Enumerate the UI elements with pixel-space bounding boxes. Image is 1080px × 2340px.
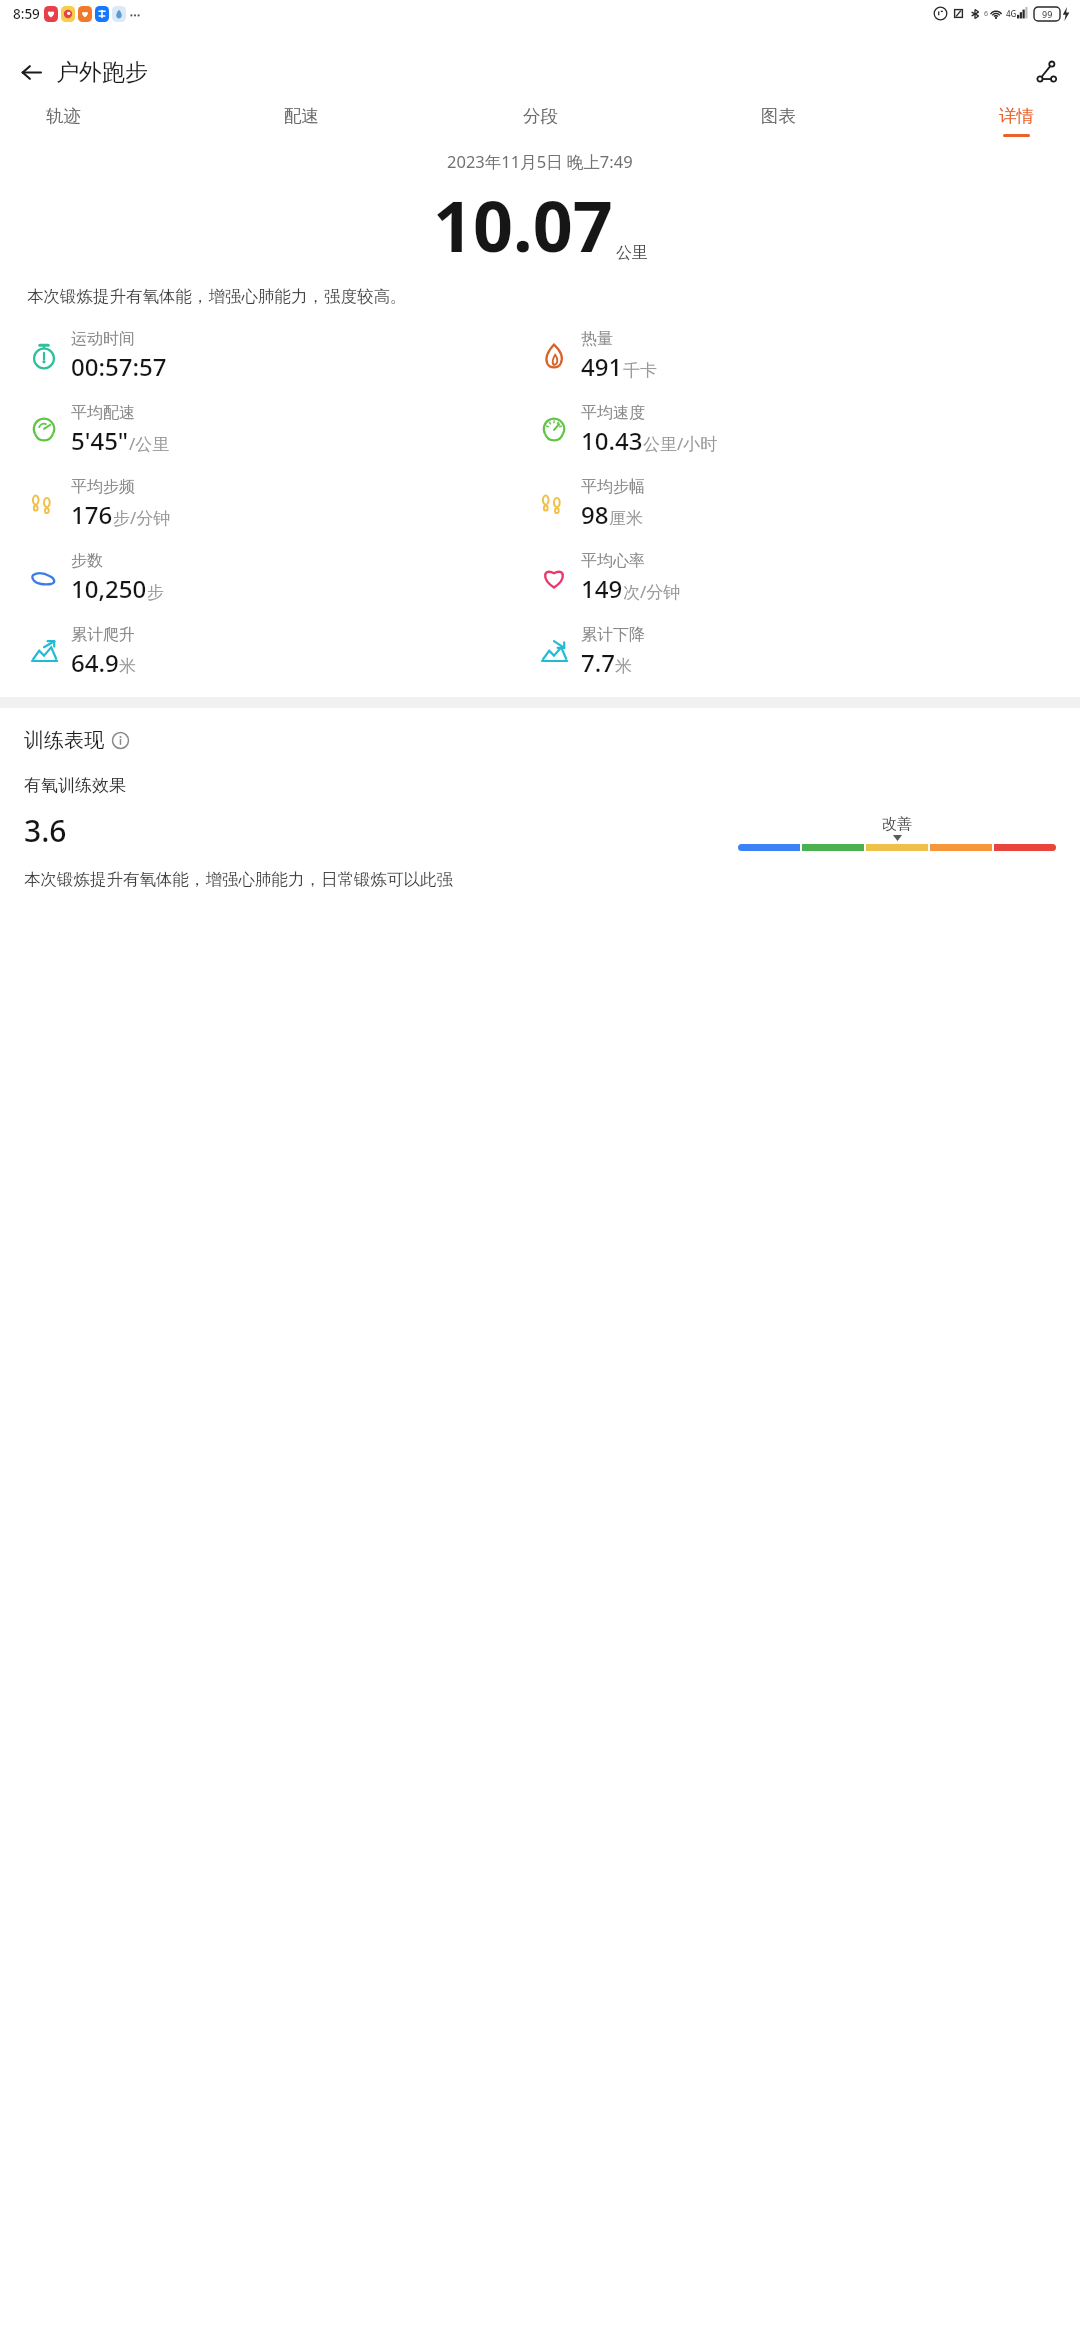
staticText: 热量 — [581, 329, 613, 349]
staticText: 本次锻炼提升有氧体能，增强心肺能力，强度较高。 — [27, 286, 1053, 307]
staticText: 平均步频 — [71, 477, 135, 497]
staticText: 改善 — [882, 815, 912, 834]
staticText: 次/分钟 — [623, 580, 681, 603]
staticText: 149 — [581, 572, 623, 605]
button[interactable]: 平均步幅 — [534, 477, 1070, 531]
staticText: 10,250 — [71, 572, 147, 605]
button[interactable]: 训练表现 — [24, 728, 129, 753]
button[interactable]: 配速 — [280, 105, 323, 137]
staticText: 轨迹 — [46, 105, 81, 127]
staticText: 米 — [119, 656, 136, 677]
staticText: 2023年11月5日 晚上7:49 — [447, 150, 633, 173]
other: Info — [112, 732, 129, 749]
staticText: 有氧训练效果 — [24, 775, 126, 796]
staticText: 00:57:57 — [71, 350, 167, 383]
staticText: 6 — [984, 9, 989, 19]
staticText: 8:59 — [13, 5, 40, 23]
staticText: 户外跑步 — [56, 58, 148, 87]
staticText: 步 — [147, 582, 164, 603]
button[interactable]: 步数 — [24, 551, 534, 605]
button[interactable]: 分段 — [519, 105, 562, 137]
button[interactable]: 平均配速 — [24, 403, 534, 457]
staticText: 公里 — [616, 243, 648, 263]
staticText: 累计下降 — [581, 625, 645, 645]
staticText: 步数 — [71, 551, 103, 571]
button[interactable]: 平均步频 — [24, 477, 534, 531]
staticText: 491 — [581, 350, 623, 383]
staticText: 平均心率 — [581, 551, 645, 571]
staticText: 7.7 — [581, 646, 615, 679]
staticText: /公里 — [129, 432, 170, 455]
staticText: 分段 — [523, 105, 558, 127]
staticText: 平均配速 — [71, 403, 135, 423]
button[interactable]: 累计下降 — [534, 625, 1070, 679]
button[interactable]: 平均心率 — [534, 551, 1070, 605]
staticText: 4G — [1006, 8, 1017, 19]
staticText: 本次锻炼提升有氧体能，增强心肺能力，日常锻炼可以此强 — [24, 869, 453, 890]
staticText: 步/分钟 — [113, 506, 171, 529]
button[interactable]: Share — [1030, 57, 1064, 87]
staticText: 米 — [615, 656, 632, 677]
staticText: 3.6 — [24, 810, 67, 851]
staticText: 千卡 — [623, 360, 657, 381]
button[interactable]: 轨迹 — [42, 105, 85, 137]
staticText: 98 — [581, 498, 609, 531]
staticText: 详情 — [999, 105, 1034, 127]
button[interactable]: 平均速度 — [534, 403, 1070, 457]
staticText: 累计爬升 — [71, 625, 135, 645]
staticText: 图表 — [761, 105, 796, 127]
button[interactable]: 图表 — [757, 105, 800, 137]
button[interactable]: 累计爬升 — [24, 625, 534, 679]
staticText: 平均步幅 — [581, 477, 645, 497]
staticText: 运动时间 — [71, 329, 135, 349]
staticText: 平均速度 — [581, 403, 645, 423]
staticText: 5'45" — [71, 424, 129, 457]
staticText: 10.07 — [433, 177, 613, 272]
button[interactable]: Back — [16, 57, 46, 87]
staticText: 公里/小时 — [643, 432, 718, 455]
staticText: 176 — [71, 498, 113, 531]
button[interactable]: 详情 — [995, 105, 1038, 137]
staticText: 64.9 — [71, 646, 119, 679]
button[interactable]: 运动时间 — [24, 329, 534, 383]
staticText: 配速 — [284, 105, 319, 127]
staticText: 99 — [1042, 8, 1053, 20]
staticText: 10.43 — [581, 424, 643, 457]
staticText: 训练表现 — [24, 728, 104, 753]
staticText: 厘米 — [609, 508, 643, 529]
button[interactable]: 热量 — [534, 329, 1070, 383]
